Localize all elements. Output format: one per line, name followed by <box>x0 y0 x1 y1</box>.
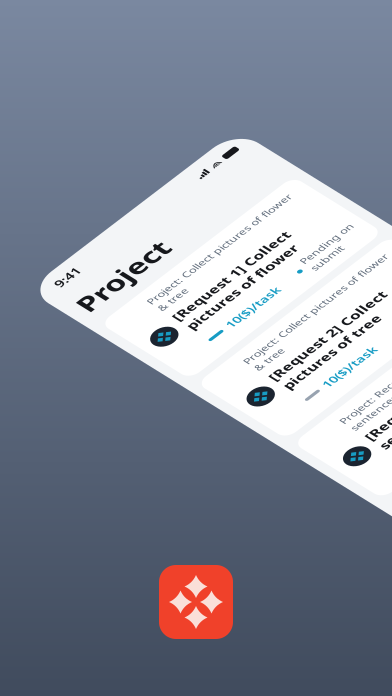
button[interactable]: Project: Record audio of sentences <box>16 551 377 696</box>
staticText: Not-yet applied <box>300 477 361 523</box>
staticText: Project: Record audio of sentences <box>84 565 278 611</box>
button[interactable]: Project: Collect pictures of flower & tr… <box>16 344 377 537</box>
button[interactable]: App icon <box>159 565 233 639</box>
staticText: [Request 1] Collect pictures of flower <box>84 204 297 264</box>
staticText: 10($)/task <box>119 280 214 307</box>
staticText: Project: Collect pictures of flower & tr… <box>84 358 349 404</box>
button[interactable]: Project: Collect pictures of flower & tr… <box>16 138 377 330</box>
staticText: [Request 2] Collect pictures of tree <box>84 410 297 471</box>
staticText: Pending on submit <box>267 270 361 316</box>
staticText: [Request 3] Record 100 sentences <box>84 617 342 677</box>
staticText: Project: Collect pictures of flower & tr… <box>84 152 349 198</box>
